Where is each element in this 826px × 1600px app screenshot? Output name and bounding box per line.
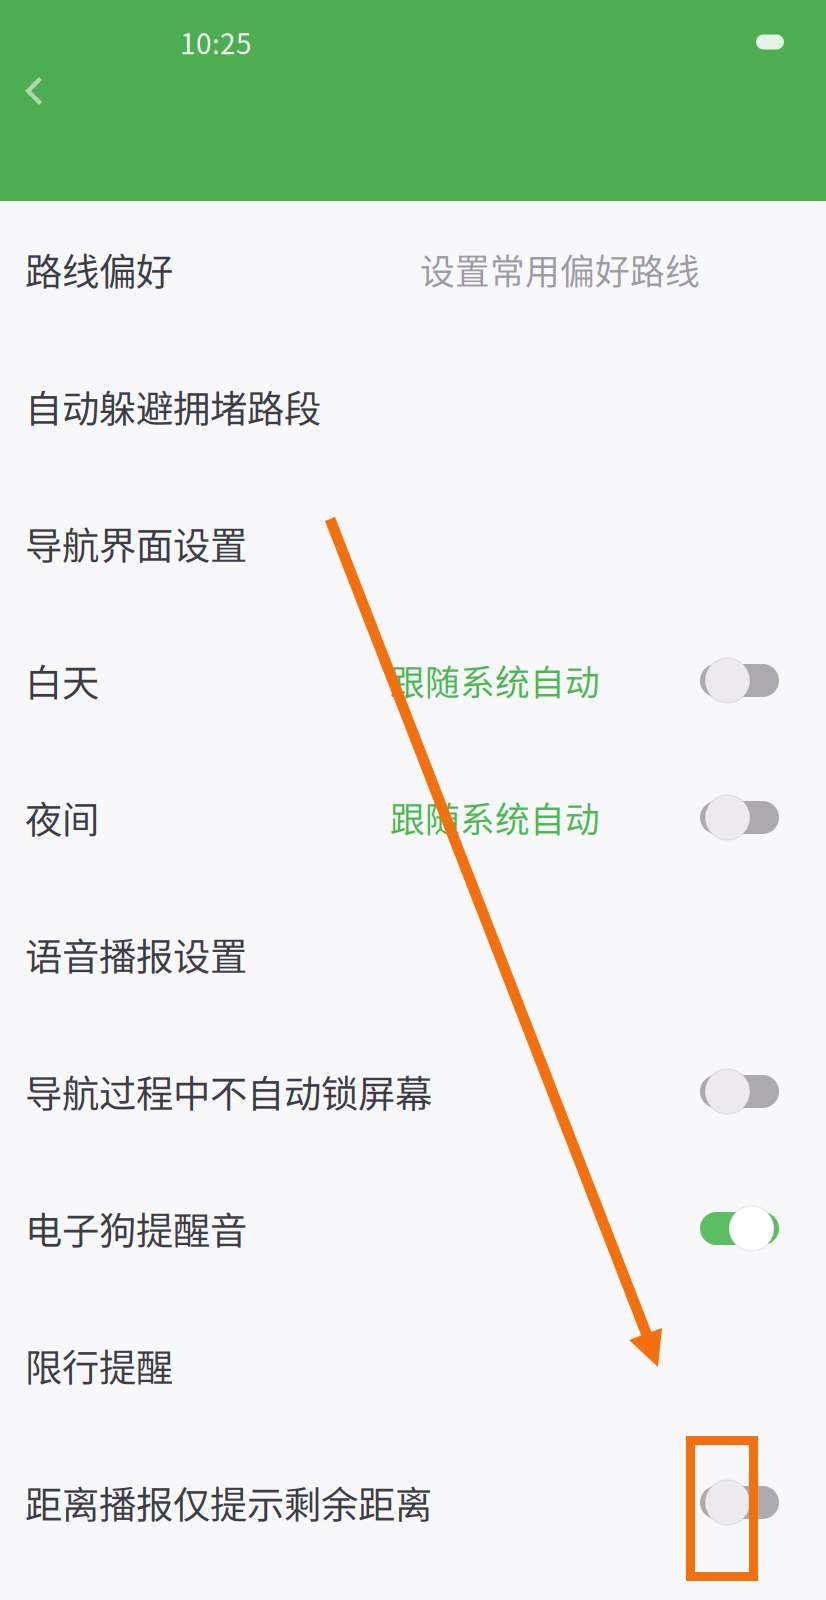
staticText: 路线偏好: [25, 242, 173, 297]
button[interactable]: 白天: [0, 612, 826, 749]
staticText: 设置常用偏好路线: [420, 244, 700, 295]
staticText: 距离播报仅提示剩余距离: [25, 1475, 432, 1530]
staticText: 语音播报设置: [25, 927, 247, 982]
staticText: 10:25: [180, 22, 252, 62]
button[interactable]: Switch off: [700, 795, 779, 840]
button[interactable]: 导航界面设置: [0, 475, 826, 612]
button[interactable]: 距离播报仅提示剩余距离: [0, 1434, 826, 1571]
button[interactable]: 导航过程中不自动锁屏幕: [0, 1023, 826, 1160]
button[interactable]: Back: [14, 70, 58, 114]
button[interactable]: 语音播报设置: [0, 886, 826, 1023]
staticText: 自动躲避拥堵路段: [25, 379, 321, 434]
staticText: 夜间: [25, 790, 99, 845]
staticText: 电子狗提醒音: [25, 1201, 247, 1256]
staticText: 导航过程中不自动锁屏幕: [25, 1064, 432, 1119]
button[interactable]: Switch off: [700, 658, 779, 703]
staticText: 跟随系统自动: [390, 792, 600, 843]
staticText: 限行提醒: [25, 1338, 173, 1393]
staticText: 跟随系统自动: [390, 655, 600, 706]
button[interactable]: 夜间: [0, 749, 826, 886]
button[interactable]: 路线偏好: [0, 201, 826, 338]
staticText: 导航界面设置: [25, 516, 247, 571]
button[interactable]: Switch on: [700, 1206, 779, 1251]
button[interactable]: 自动躲避拥堵路段: [0, 338, 826, 475]
button[interactable]: 限行提醒: [0, 1297, 826, 1434]
button[interactable]: Switch off: [700, 1069, 779, 1114]
staticText: 白天: [25, 653, 99, 708]
button[interactable]: 电子狗提醒音: [0, 1160, 826, 1297]
button[interactable]: Switch off: [700, 1480, 779, 1525]
